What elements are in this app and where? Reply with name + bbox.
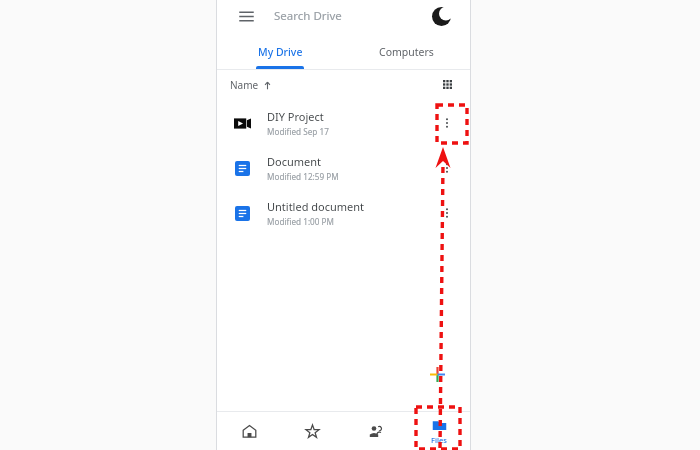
button[interactable]: Account [428,3,454,29]
button[interactable]: Switch to grid view [437,74,459,96]
button[interactable]: DIY Project [217,100,470,145]
staticText: Modified 12:59 PM [267,171,339,182]
button[interactable]: Document [217,145,470,190]
button[interactable]: Shared [344,412,407,450]
button[interactable]: Create new [420,357,454,391]
staticText: Document [267,154,322,169]
button[interactable]: More options for DIY Project [435,111,459,135]
button[interactable]: Files [407,412,470,450]
staticText: Modified 1:00 PM [267,216,334,227]
button[interactable]: Starred [281,412,344,450]
button[interactable]: My Drive [217,38,343,69]
button[interactable]: Computers [343,38,470,69]
button[interactable]: Open navigation menu [224,0,463,31]
button[interactable]: Untitled document [217,190,470,235]
button[interactable]: Name [230,78,272,92]
staticText: DIY Project [267,109,324,124]
button[interactable]: More options for Untitled document [435,201,459,225]
staticText: Modified Sep 17 [267,126,329,137]
button[interactable]: Open navigation menu [235,5,257,27]
staticText: Search Drive [274,8,342,24]
button[interactable]: Home [217,412,281,450]
staticText: My Drive [258,45,303,59]
staticText: Untitled document [267,199,365,214]
button[interactable]: More options for Document [435,156,459,180]
staticText: Files [431,435,447,445]
staticText: Name [230,78,259,92]
staticText: Computers [379,45,434,59]
